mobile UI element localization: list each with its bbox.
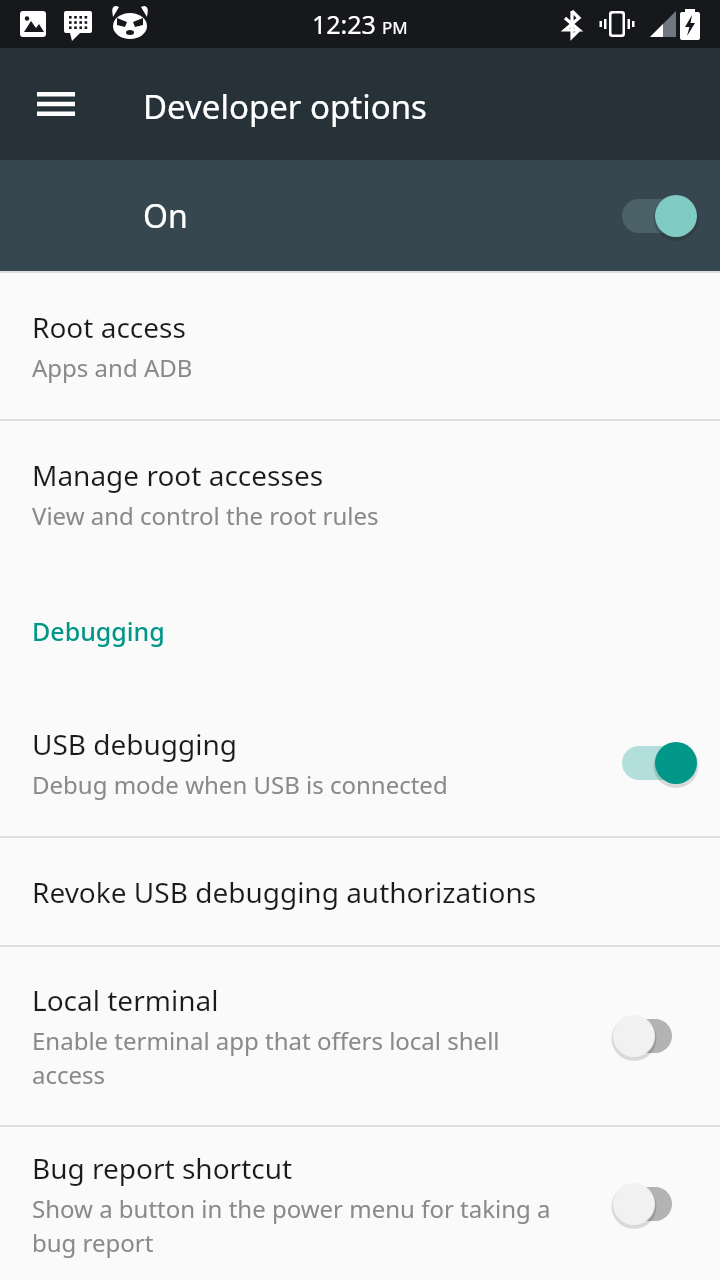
button[interactable]: Root access <box>0 273 720 419</box>
button[interactable]: Revoke USB debugging authorizations <box>0 838 720 945</box>
staticText: Developer options <box>143 84 427 129</box>
button[interactable]: Local terminal <box>0 947 720 1125</box>
staticText: Root access <box>32 308 186 346</box>
button[interactable]: USB debugging <box>0 690 720 836</box>
staticText: Enable terminal app that offers local sh… <box>32 1024 570 1091</box>
button[interactable]: Toggle <box>608 188 692 244</box>
staticText: Revoke USB debugging authorizations <box>32 873 537 911</box>
staticText: USB debugging <box>32 725 238 763</box>
staticText: Show a button in the power menu for taki… <box>32 1192 570 1259</box>
staticText: Debugging <box>32 614 165 648</box>
button[interactable]: Toggle <box>608 1176 692 1232</box>
staticText: Local terminal <box>32 981 219 1019</box>
button[interactable]: Navigation menu <box>20 68 92 140</box>
button[interactable]: Toggle <box>608 735 692 791</box>
staticText: Bug report shortcut <box>32 1149 293 1187</box>
button[interactable]: On <box>0 160 720 271</box>
staticText: View and control the root rules <box>32 499 379 532</box>
staticText: PM <box>382 16 408 39</box>
staticText: Debug mode when USB is connected <box>32 768 448 801</box>
staticText: Manage root accesses <box>32 456 324 494</box>
staticText: On <box>143 194 188 238</box>
staticText: 12:23 <box>312 7 376 41</box>
button[interactable]: Toggle <box>608 1008 692 1064</box>
button[interactable]: Manage root accesses <box>0 421 720 567</box>
staticText: Apps and ADB <box>32 351 193 384</box>
button[interactable]: Bug report shortcut <box>0 1127 720 1280</box>
